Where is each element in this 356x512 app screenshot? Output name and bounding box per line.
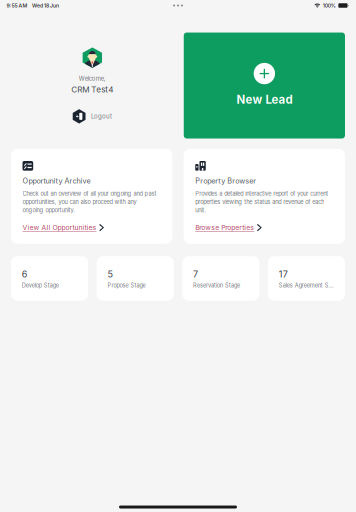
- staticText: properties viewing the status and revenu…: [195, 198, 324, 205]
- staticText: Provides a detailed interactive report o…: [195, 190, 328, 197]
- staticText: Logout: [91, 113, 112, 120]
- button[interactable]: New Lead: [184, 32, 345, 138]
- staticText: 9:55 AM: [7, 2, 28, 9]
- button[interactable]: 7: [182, 256, 259, 301]
- staticText: Wed 18 Jun: [32, 2, 59, 9]
- staticText: Sales Agreement Signed: [279, 282, 334, 289]
- staticText: Welcome,: [79, 75, 106, 82]
- staticText: 6: [22, 269, 28, 280]
- button[interactable]: Browse Properties: [195, 223, 262, 232]
- staticText: CRM Test4: [71, 85, 113, 94]
- button[interactable]: 6: [11, 256, 88, 301]
- staticText: View All Opportunities: [22, 223, 96, 232]
- button[interactable]: Logout: [73, 109, 112, 124]
- staticText: Propose Stage: [107, 282, 145, 289]
- staticText: ongoing opportunity.: [22, 207, 75, 213]
- staticText: 7: [193, 269, 198, 280]
- staticText: opportunities, you can also proceed with…: [22, 198, 136, 205]
- button[interactable]: 5: [97, 256, 174, 301]
- staticText: 100%: [323, 2, 336, 9]
- staticText: Property Browser: [195, 176, 256, 185]
- staticText: 5: [107, 269, 113, 280]
- staticText: unit.: [195, 207, 206, 213]
- staticText: Develop Stage: [22, 282, 59, 289]
- staticText: Check out an overview of all your ongoin…: [22, 190, 156, 197]
- staticText: New Lead: [236, 93, 292, 107]
- button[interactable]: View All Opportunities: [22, 223, 104, 232]
- staticText: Opportunity Archive: [22, 176, 90, 185]
- staticText: Browse Properties: [195, 223, 254, 232]
- staticText: Reservation Stage: [193, 282, 240, 289]
- button[interactable]: 17: [268, 256, 345, 301]
- staticText: 17: [279, 269, 288, 280]
